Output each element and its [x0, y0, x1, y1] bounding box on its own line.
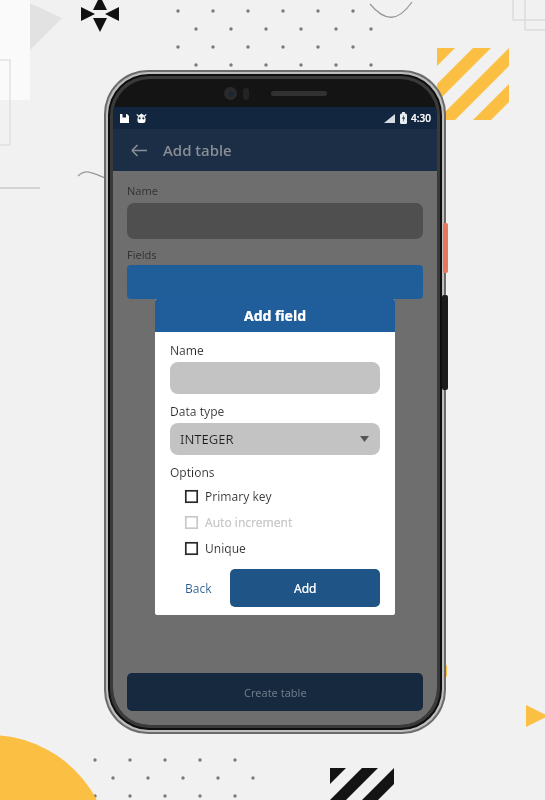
button[interactable]: Back — [170, 569, 226, 607]
staticText: Add field — [244, 306, 306, 325]
button[interactable]: Add — [230, 569, 380, 607]
staticText: Fields — [127, 247, 157, 262]
staticText: Auto increment — [205, 514, 293, 530]
button[interactable]: Create table — [127, 673, 423, 711]
staticText: INTEGER — [180, 430, 234, 448]
staticText: 4:30 — [411, 111, 431, 125]
staticText: Data type — [170, 403, 225, 419]
staticText: Name — [170, 342, 204, 358]
staticText: Name — [127, 183, 159, 198]
staticText: Options — [170, 464, 215, 480]
staticText: Create table — [244, 685, 307, 700]
staticText: Primary key — [205, 488, 272, 504]
button[interactable]: INTEGER — [170, 423, 380, 455]
button[interactable] — [170, 362, 380, 394]
button[interactable]: Auto increment — [170, 509, 380, 535]
staticText: Add — [294, 580, 317, 596]
button[interactable]: Back — [121, 133, 155, 167]
staticText: Add table — [163, 140, 232, 160]
staticText: Unique — [205, 540, 246, 556]
button[interactable]: Primary key — [170, 483, 380, 509]
button[interactable]: Unique — [170, 535, 380, 561]
staticText: Back — [185, 580, 212, 596]
